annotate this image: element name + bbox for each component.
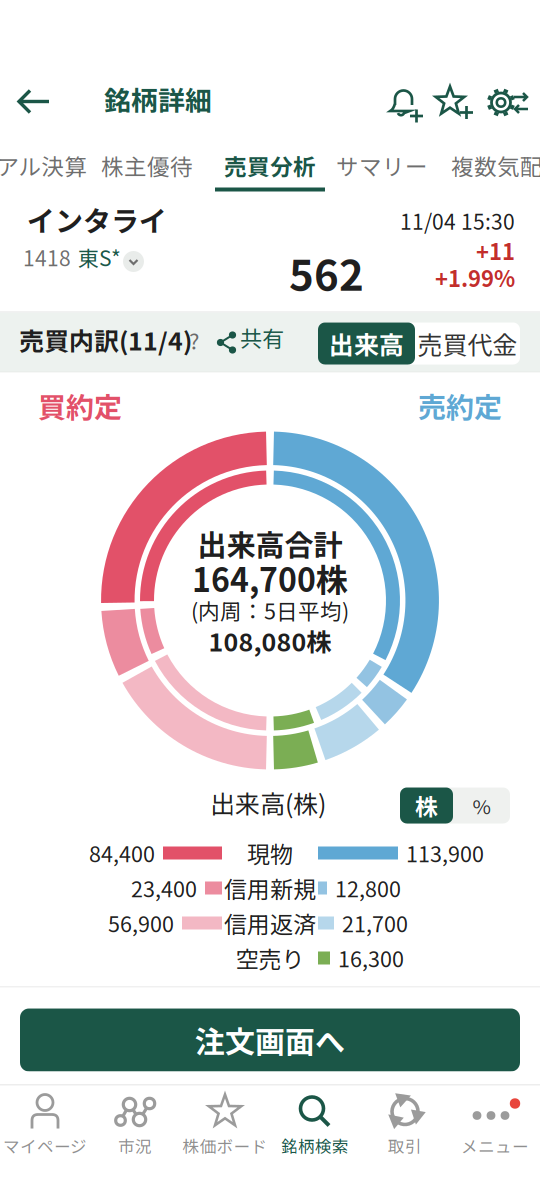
- button[interactable]: メニュー: [450, 1085, 540, 1198]
- staticText: サマリー: [336, 149, 428, 182]
- staticText: 11/04 15:30: [400, 205, 515, 236]
- staticText: 売買内訳(11/4): [19, 321, 192, 358]
- staticText: 株: [415, 789, 438, 822]
- button[interactable]: マイページ: [0, 1085, 90, 1198]
- staticText: 信用新規: [224, 871, 316, 905]
- button[interactable]: [433, 83, 475, 123]
- button[interactable]: 取引: [360, 1085, 450, 1198]
- staticText: 銘柄検索: [281, 1133, 349, 1157]
- staticText: 空売り: [235, 941, 304, 975]
- staticText: %: [472, 791, 490, 820]
- button[interactable]: 注文画面へ: [20, 1008, 520, 1071]
- staticText: マイページ: [3, 1133, 87, 1157]
- staticText: 株主優待: [101, 149, 193, 182]
- staticText: 銘柄詳細: [104, 79, 212, 119]
- staticText: 注文画面へ: [195, 1018, 345, 1062]
- staticText: 現物: [247, 836, 293, 870]
- staticText: 出来高: [329, 325, 404, 362]
- button[interactable]: アル決算: [0, 141, 117, 189]
- staticText: 取引: [388, 1133, 422, 1157]
- staticText: ?: [189, 324, 199, 356]
- staticText: 108,080株: [208, 622, 331, 659]
- staticText: メニュー: [461, 1133, 529, 1157]
- button[interactable]: 株価ボード: [180, 1085, 270, 1198]
- staticText: アル決算: [0, 149, 87, 182]
- staticText: 23,400: [131, 872, 197, 903]
- staticText: 56,900: [108, 907, 174, 938]
- staticText: 164,700株: [192, 555, 348, 601]
- staticText: インタライ: [27, 199, 167, 239]
- staticText: 84,400: [89, 837, 155, 868]
- staticText: 東S*: [78, 242, 121, 272]
- staticText: 出来高(株): [210, 784, 326, 821]
- button[interactable]: 市況: [90, 1085, 180, 1198]
- staticText: 株価ボード: [182, 1133, 267, 1157]
- staticText: 562: [289, 242, 364, 303]
- button[interactable]: 株: [400, 787, 510, 823]
- staticText: +11: [476, 234, 515, 266]
- button[interactable]: [123, 251, 144, 272]
- button[interactable]: 複数気配: [422, 141, 540, 189]
- button[interactable]: [16, 88, 52, 114]
- button[interactable]: [386, 83, 424, 123]
- staticText: 21,700: [342, 907, 408, 938]
- staticText: 12,800: [335, 872, 401, 903]
- staticText: 16,300: [338, 942, 404, 973]
- staticText: +1.99%: [435, 261, 515, 293]
- staticText: 複数気配: [451, 149, 540, 182]
- button[interactable]: [484, 85, 530, 121]
- button[interactable]: 売買分析: [195, 141, 345, 189]
- staticText: 共有: [240, 321, 284, 353]
- button[interactable]: 株主優待: [72, 141, 222, 189]
- button[interactable]: 共有: [216, 312, 288, 371]
- button[interactable]: サマリー: [307, 141, 457, 189]
- staticText: 買約定: [38, 385, 122, 426]
- staticText: 113,900: [406, 837, 484, 868]
- staticText: 信用返済: [224, 906, 316, 940]
- button[interactable]: 銘柄検索: [270, 1085, 360, 1198]
- staticText: (内周：5日平均): [191, 594, 349, 626]
- staticText: 売約定: [418, 385, 502, 426]
- staticText: 市況: [118, 1133, 152, 1157]
- staticText: 1418: [23, 242, 71, 272]
- staticText: 売買代金: [417, 325, 517, 362]
- button[interactable]: 出来高: [318, 322, 520, 364]
- staticText: 出来高合計: [197, 522, 342, 564]
- staticText: 売買分析: [224, 149, 316, 182]
